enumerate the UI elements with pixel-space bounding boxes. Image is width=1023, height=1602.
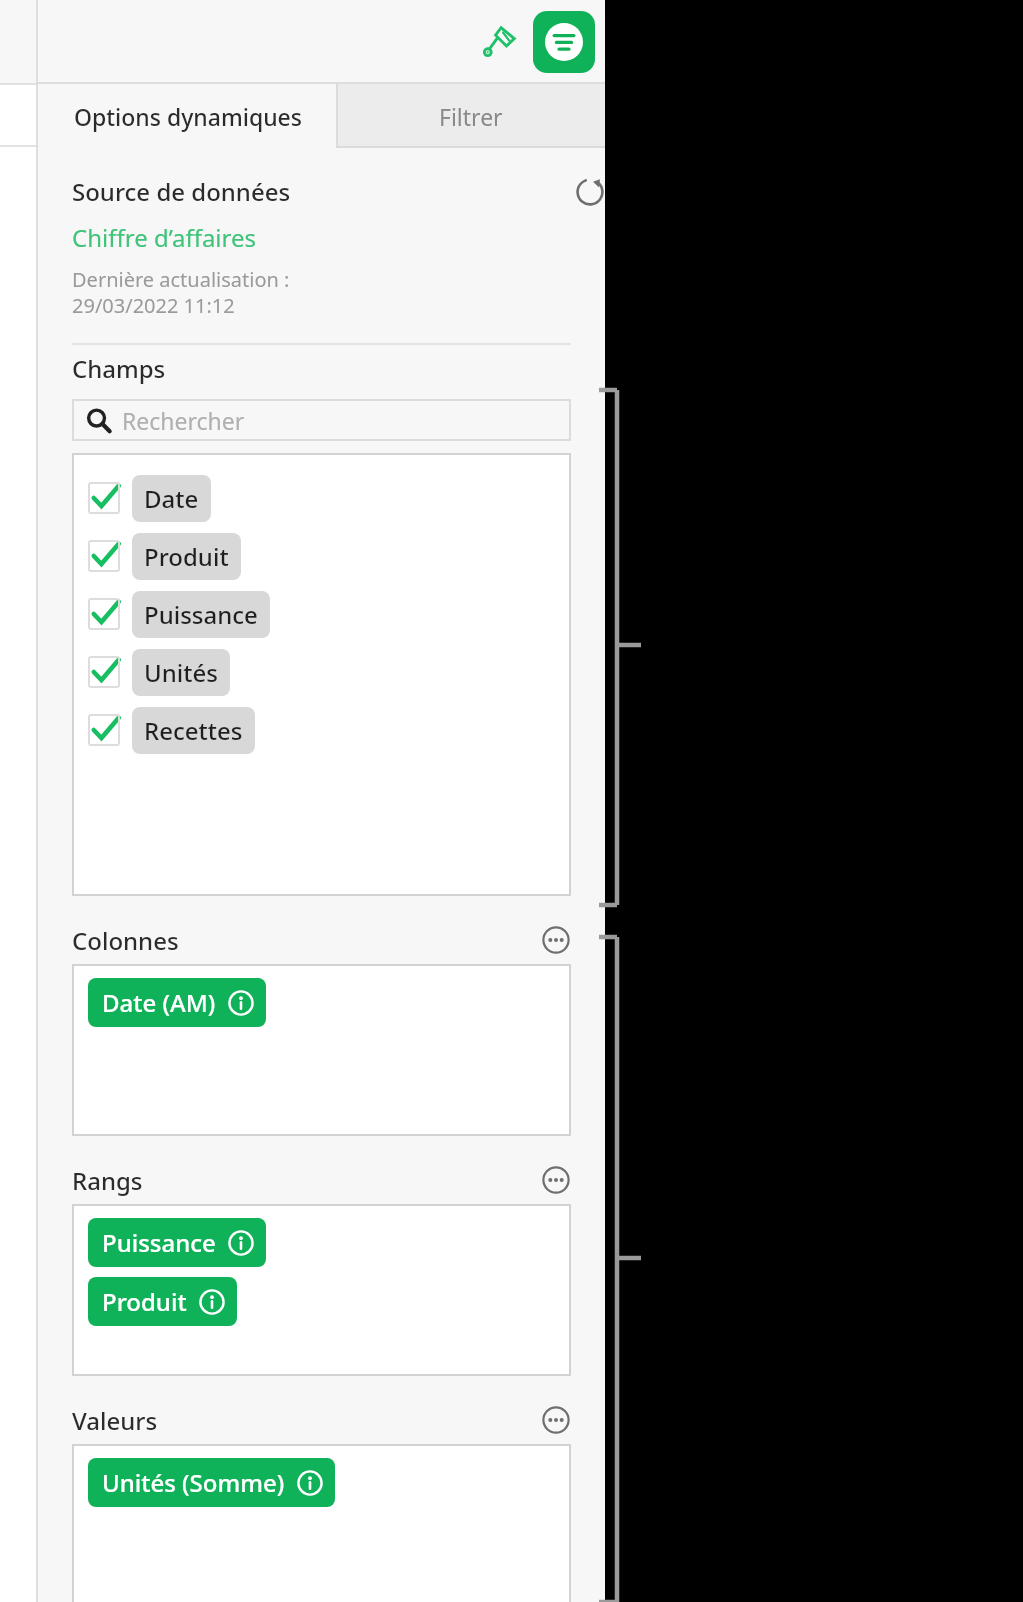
staticText: Options dynamiques bbox=[74, 101, 302, 132]
staticText: Chiffre d’affaires bbox=[72, 221, 257, 254]
staticText: Valeurs bbox=[72, 1404, 158, 1437]
staticText: Rechercher bbox=[122, 405, 245, 436]
staticText: Recettes bbox=[144, 714, 243, 747]
button[interactable]: Format bbox=[473, 16, 525, 68]
staticText: Puissance bbox=[102, 1226, 216, 1259]
button[interactable]: Unités (Somme) bbox=[88, 1458, 335, 1507]
button[interactable]: Puissance bbox=[88, 1218, 266, 1267]
staticText: Unités (Somme) bbox=[102, 1466, 285, 1499]
staticText: Rangs bbox=[72, 1164, 143, 1197]
staticText: Date (AM) bbox=[102, 986, 216, 1019]
button[interactable]: Produit bbox=[88, 1277, 237, 1326]
staticText: Produit bbox=[144, 540, 229, 573]
staticText: Colonnes bbox=[72, 924, 179, 957]
staticText: Filtrer bbox=[439, 101, 503, 132]
button[interactable]: Produit bbox=[88, 527, 241, 585]
staticText: Puissance bbox=[144, 598, 258, 631]
staticText: Source de données bbox=[72, 175, 291, 208]
staticText: Date bbox=[144, 482, 199, 515]
staticText: Unités bbox=[144, 656, 218, 689]
staticText: Champs bbox=[72, 352, 166, 385]
button[interactable]: Date (AM) bbox=[88, 978, 266, 1027]
button[interactable]: Tableau croisé dynamique bbox=[533, 11, 595, 73]
button[interactable]: Unités bbox=[88, 643, 230, 701]
button[interactable]: Puissance bbox=[88, 585, 270, 643]
button[interactable]: Actualiser bbox=[565, 166, 615, 216]
button[interactable]: Filtrer bbox=[337, 84, 605, 148]
staticText: Dernière actualisation : 29/03/2022 11:1… bbox=[72, 266, 290, 319]
button[interactable]: Plus d’options pour Rangs bbox=[535, 1159, 577, 1201]
button[interactable]: Date bbox=[88, 469, 211, 527]
button[interactable]: Options dynamiques bbox=[38, 84, 337, 148]
button[interactable]: Plus d’options pour Colonnes bbox=[535, 919, 577, 961]
button[interactable]: Recettes bbox=[88, 701, 255, 759]
button[interactable]: Rechercher bbox=[72, 399, 571, 441]
button[interactable]: Plus d’options pour Valeurs bbox=[535, 1399, 577, 1441]
staticText: Produit bbox=[102, 1285, 187, 1318]
